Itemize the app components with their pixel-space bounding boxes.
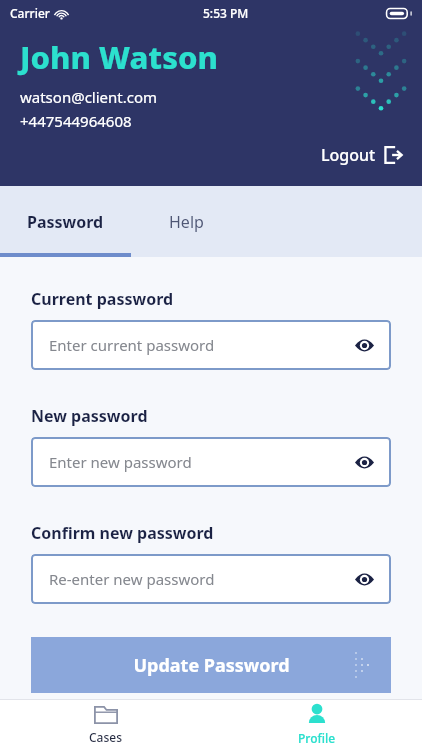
staticText: Password bbox=[27, 211, 104, 233]
staticText: Logout bbox=[321, 144, 376, 166]
staticText: Current password bbox=[31, 288, 174, 310]
staticText: Carrier bbox=[10, 5, 50, 21]
button[interactable]: Enter new password bbox=[31, 437, 391, 487]
button[interactable]: Enter current password bbox=[31, 320, 391, 370]
button[interactable]: Show password bbox=[351, 449, 377, 475]
staticText: Confirm new password bbox=[31, 522, 214, 544]
staticText: Profile bbox=[298, 730, 336, 746]
button[interactable]: Logout bbox=[317, 140, 406, 170]
button[interactable]: Cases bbox=[0, 700, 211, 750]
button[interactable]: Profile bbox=[211, 700, 422, 750]
button[interactable]: Update Password bbox=[31, 637, 391, 693]
staticText: watson@client.com bbox=[20, 87, 158, 107]
staticText: Enter new password bbox=[49, 452, 192, 472]
staticText: Help bbox=[169, 211, 204, 233]
button[interactable]: Help bbox=[131, 186, 241, 257]
staticText: Update Password bbox=[133, 653, 290, 678]
staticText: Enter current password bbox=[49, 335, 215, 355]
button[interactable]: Show password bbox=[351, 332, 377, 358]
staticText: New password bbox=[31, 405, 148, 427]
staticText: Re-enter new password bbox=[49, 569, 215, 589]
staticText: Cases bbox=[89, 729, 123, 745]
other: Logout bbox=[384, 146, 402, 164]
button[interactable]: Re-enter new password bbox=[31, 554, 391, 604]
button[interactable]: Show password bbox=[351, 566, 377, 592]
staticText: 5:53 PM bbox=[203, 5, 249, 21]
staticText: +447544964608 bbox=[20, 111, 132, 131]
button[interactable]: Password bbox=[0, 186, 131, 257]
staticText: John Watson bbox=[20, 36, 218, 78]
